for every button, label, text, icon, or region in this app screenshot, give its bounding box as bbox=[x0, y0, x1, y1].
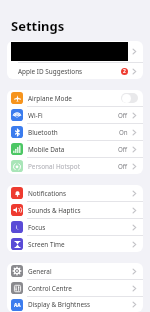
staticText: AA bbox=[14, 302, 21, 309]
button[interactable]: Sounds & Haptics bbox=[7, 202, 143, 218]
button[interactable]: Airplane Mode bbox=[7, 90, 143, 106]
staticText: 2 bbox=[123, 68, 126, 75]
staticText: Off bbox=[118, 145, 128, 153]
staticText: General bbox=[28, 267, 52, 276]
button[interactable]: Personal Hotspot bbox=[7, 158, 143, 174]
staticText: Apple ID Suggestions bbox=[18, 67, 83, 76]
staticText: Notifications bbox=[28, 189, 67, 198]
staticText: Off bbox=[118, 111, 128, 119]
staticText: Screen Time bbox=[28, 240, 65, 249]
button[interactable]: Airplane Mode toggle bbox=[121, 93, 138, 103]
staticText: Display & Brightness bbox=[28, 300, 91, 309]
staticText: Personal Hotspot bbox=[28, 162, 80, 171]
button[interactable]: Mobile Data bbox=[7, 141, 143, 157]
button[interactable]: Wi-Fi bbox=[7, 107, 143, 123]
button[interactable]: Control Centre bbox=[7, 280, 143, 296]
button[interactable]: Notifications bbox=[7, 185, 143, 201]
button[interactable]: AA bbox=[7, 297, 143, 312]
staticText: On bbox=[119, 128, 128, 136]
staticText: Settings bbox=[11, 17, 65, 35]
button[interactable]: Bluetooth bbox=[7, 124, 143, 140]
staticText: Bluetooth bbox=[28, 128, 58, 137]
staticText: Focus bbox=[28, 223, 46, 232]
staticText: Wi-Fi bbox=[28, 111, 43, 120]
staticText: Airplane Mode bbox=[28, 94, 72, 103]
button[interactable]: General bbox=[7, 263, 143, 279]
staticText: Sounds & Haptics bbox=[28, 206, 81, 215]
staticText: Off bbox=[118, 162, 128, 170]
staticText: Mobile Data bbox=[28, 145, 65, 154]
button[interactable]: Focus bbox=[7, 219, 143, 235]
staticText: Control Centre bbox=[28, 284, 72, 293]
button[interactable]: Screen Time bbox=[7, 236, 143, 252]
button[interactable]: Apple ID Suggestions bbox=[7, 63, 143, 79]
button[interactable] bbox=[7, 41, 143, 62]
